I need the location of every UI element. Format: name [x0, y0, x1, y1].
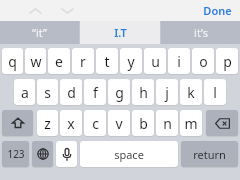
staticText: o: [199, 52, 208, 71]
button[interactable]: h: [132, 79, 154, 105]
button[interactable]: t: [96, 48, 118, 74]
staticText: e: [55, 52, 63, 71]
button[interactable]: x: [60, 110, 82, 136]
staticText: a: [21, 83, 29, 102]
staticText: g: [115, 83, 124, 102]
button[interactable]: Next field: [56, 1, 78, 20]
button[interactable]: i: [168, 48, 190, 74]
staticText: space: [114, 147, 144, 162]
button[interactable]: I.T: [80, 21, 160, 44]
button[interactable]: k: [180, 79, 202, 105]
staticText: r: [80, 52, 86, 71]
button[interactable]: z: [37, 110, 58, 136]
staticText: b: [139, 114, 148, 133]
button[interactable]: g: [108, 79, 130, 105]
staticText: h: [139, 83, 148, 102]
button[interactable]: v: [108, 110, 130, 136]
button[interactable]: n: [156, 110, 178, 136]
button[interactable]: a: [14, 79, 35, 105]
button[interactable]: o: [192, 48, 214, 74]
staticText: u: [151, 52, 160, 71]
button[interactable]: w: [25, 48, 46, 74]
button[interactable]: d: [60, 79, 82, 105]
staticText: Done: [203, 3, 232, 18]
staticText: n: [163, 114, 172, 133]
button[interactable]: b: [132, 110, 154, 136]
button[interactable]: Delete: [206, 110, 238, 136]
button[interactable]: Done: [203, 0, 232, 21]
button[interactable]: r: [72, 48, 94, 74]
button[interactable]: p: [216, 48, 238, 74]
staticText: v: [115, 114, 123, 133]
button[interactable]: Dictate: [56, 141, 77, 167]
button[interactable]: e: [48, 48, 70, 74]
staticText: j: [165, 83, 169, 102]
staticText: m: [184, 114, 198, 133]
staticText: l: [213, 83, 217, 102]
staticText: d: [67, 83, 76, 102]
staticText: y: [127, 52, 135, 71]
button[interactable]: c: [84, 110, 106, 136]
button[interactable]: j: [156, 79, 178, 105]
button[interactable]: Shift: [2, 110, 33, 136]
staticText: i: [177, 52, 181, 71]
button[interactable]: y: [120, 48, 142, 74]
button[interactable]: “it”: [0, 21, 79, 44]
staticText: “it”: [32, 25, 47, 40]
staticText: w: [30, 52, 42, 71]
staticText: it’s: [194, 25, 208, 40]
staticText: k: [187, 83, 195, 102]
staticText: f: [93, 83, 98, 102]
button[interactable]: l: [204, 79, 226, 105]
staticText: q: [8, 52, 17, 71]
button[interactable]: m: [180, 110, 202, 136]
button[interactable]: return: [181, 141, 238, 167]
button[interactable]: q: [2, 48, 23, 74]
button[interactable]: f: [84, 79, 106, 105]
staticText: t: [104, 52, 110, 71]
staticText: z: [44, 114, 51, 133]
button[interactable]: 123: [2, 141, 29, 167]
staticText: I.T: [114, 25, 127, 40]
staticText: return: [193, 147, 226, 162]
staticText: p: [223, 52, 232, 71]
button[interactable]: it’s: [161, 21, 240, 44]
staticText: x: [67, 114, 75, 133]
button[interactable]: space: [80, 141, 178, 167]
button[interactable]: Change keyboard: [32, 141, 53, 167]
button[interactable]: u: [144, 48, 166, 74]
staticText: 123: [7, 147, 25, 161]
button[interactable]: s: [37, 79, 58, 105]
staticText: s: [44, 83, 51, 102]
button[interactable]: Previous field: [24, 1, 46, 20]
staticText: c: [92, 114, 99, 133]
